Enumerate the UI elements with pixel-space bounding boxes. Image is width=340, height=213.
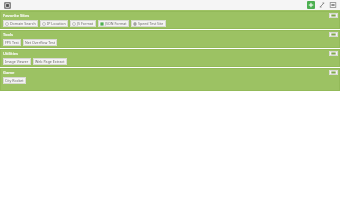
button[interactable]: Web Page Extract: [33, 58, 67, 65]
button[interactable]: More options: [329, 1, 337, 9]
button[interactable]: Game: [0, 68, 340, 91]
button[interactable]: Favorite Sites: [0, 11, 340, 29]
staticText: FPS Test: [5, 40, 19, 45]
staticText: Net Overflow Test: [25, 40, 55, 45]
button[interactable]: Edit section: [329, 70, 338, 75]
staticText: JSON Format: [105, 21, 127, 26]
staticText: Tools: [3, 32, 14, 37]
staticText: IP Location: [47, 21, 66, 26]
button[interactable]: IP Location: [40, 20, 68, 27]
button[interactable]: Speed Test Site: [131, 20, 166, 27]
button[interactable]: City Rocket: [3, 77, 26, 84]
button[interactable]: JSON Format: [98, 20, 129, 27]
staticText: Game: [3, 70, 15, 75]
staticText: Speed Test Site: [138, 21, 164, 26]
button[interactable]: FPS Test: [3, 39, 21, 46]
staticText: Web Page Extract: [35, 59, 65, 64]
button[interactable]: Menu: [4, 2, 11, 9]
button[interactable]: Edit section: [329, 13, 338, 18]
button[interactable]: Image Viewer: [3, 58, 31, 65]
button[interactable]: Utilities: [0, 49, 340, 67]
button[interactable]: JS Format: [70, 20, 96, 27]
staticText: Domain Search: [10, 21, 36, 26]
button[interactable]: Expand: [318, 1, 326, 9]
button[interactable]: Net Overflow Test: [23, 39, 57, 46]
staticText: Image Viewer: [5, 59, 29, 64]
button[interactable]: Edit section: [329, 32, 338, 37]
button[interactable]: Tools: [0, 30, 340, 48]
button[interactable]: Edit section: [329, 51, 338, 56]
staticText: Utilities: [3, 51, 19, 56]
staticText: City Rocket: [5, 78, 24, 83]
staticText: JS Format: [77, 21, 94, 26]
button[interactable]: Domain Search: [3, 20, 38, 27]
staticText: Favorite Sites: [3, 13, 30, 18]
button[interactable]: Add: [307, 1, 315, 9]
